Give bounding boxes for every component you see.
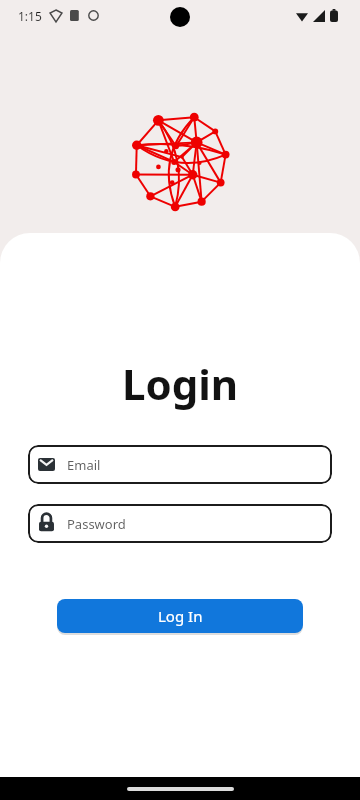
button[interactable]: Password (28, 504, 332, 543)
staticText: Email (67, 456, 101, 474)
staticText: Log In (158, 606, 203, 626)
button[interactable]: Log In (57, 599, 303, 633)
button[interactable]: Email (28, 445, 332, 484)
staticText: 1:15 (18, 8, 42, 24)
staticText: Password (67, 515, 126, 533)
staticText: Login (122, 355, 239, 412)
other: App logo (131, 112, 229, 210)
